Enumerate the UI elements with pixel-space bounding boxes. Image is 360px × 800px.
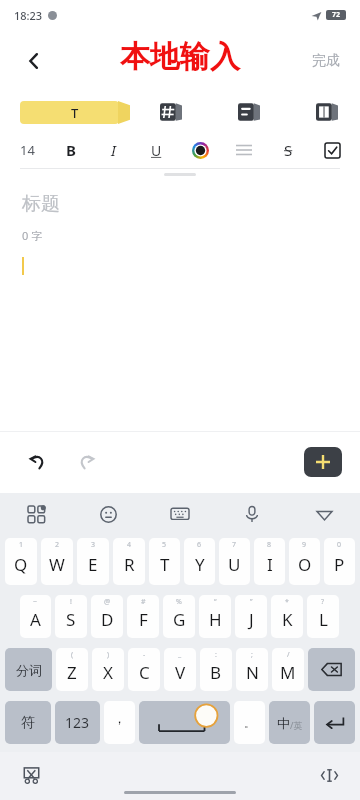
staticText: 0 字 <box>22 228 43 243</box>
staticText: I <box>111 140 116 160</box>
button[interactable]: ; <box>236 648 268 691</box>
button[interactable]: “ <box>199 595 231 638</box>
button[interactable]: Period <box>234 701 265 744</box>
staticText: 本地输入 <box>120 38 240 76</box>
staticText: S <box>66 608 76 631</box>
button[interactable]: ” <box>235 595 267 638</box>
button[interactable]: Bold <box>49 132 92 168</box>
button[interactable]: Checklist <box>310 132 354 168</box>
button[interactable]: Text color <box>178 132 222 168</box>
staticText: - <box>143 650 146 660</box>
button[interactable]: Paragraph style <box>234 97 264 127</box>
button[interactable]: Back <box>14 41 54 81</box>
button[interactable]: Keyboard <box>144 493 216 535</box>
button[interactable]: Space <box>139 701 230 744</box>
button[interactable]: Emoji <box>72 493 144 535</box>
staticText: I <box>267 553 273 576</box>
button[interactable]: 5 <box>149 538 180 585</box>
button[interactable]: Layout <box>312 97 342 127</box>
staticText: /英 <box>290 719 303 731</box>
staticText: 7 <box>232 540 237 550</box>
button[interactable]: 分词 <box>5 648 52 691</box>
button[interactable]: 4 <box>113 538 145 585</box>
button[interactable]: 9 <box>289 538 320 585</box>
button[interactable]: Add <box>304 447 342 477</box>
staticText: 。 <box>244 716 255 730</box>
staticText: K <box>282 608 293 631</box>
staticText: U <box>151 141 162 160</box>
button[interactable]: Underline <box>135 132 178 168</box>
staticText: L <box>319 608 328 631</box>
staticText: _ <box>178 650 182 660</box>
staticText: C <box>139 661 150 684</box>
button[interactable]: 7 <box>219 538 250 585</box>
staticText: / <box>287 650 290 660</box>
button[interactable]: ! <box>55 595 87 638</box>
button[interactable]: Clipboard <box>18 762 44 788</box>
button[interactable]: Enter <box>314 701 355 744</box>
button[interactable]: 6 <box>184 538 215 585</box>
button[interactable]: ( <box>56 648 88 691</box>
staticText: 6 <box>197 540 202 550</box>
button[interactable]: _ <box>164 648 196 691</box>
button[interactable]: 1 <box>5 538 37 585</box>
staticText: H <box>209 608 222 631</box>
button[interactable]: @ <box>91 595 123 638</box>
button[interactable]: 0 <box>324 538 355 585</box>
staticText: Q <box>14 553 28 576</box>
button[interactable]: 2 <box>41 538 73 585</box>
staticText: E <box>88 553 98 576</box>
staticText: 2 <box>55 540 60 550</box>
button[interactable]: Font size <box>6 132 49 168</box>
button[interactable]: # <box>127 595 159 638</box>
button[interactable]: Align <box>222 132 266 168</box>
staticText: “ <box>214 597 217 607</box>
button[interactable]: Undo <box>18 443 56 481</box>
button[interactable]: Italic <box>92 132 135 168</box>
button[interactable]: / <box>272 648 304 691</box>
button[interactable]: Redo <box>68 443 106 481</box>
button[interactable]: T <box>20 101 130 124</box>
staticText: D <box>101 608 114 631</box>
button[interactable]: Comma <box>104 701 135 744</box>
staticText: 1 <box>19 540 24 550</box>
button[interactable]: Backspace <box>308 648 355 691</box>
staticText: 完成 <box>312 52 340 70</box>
staticText: T <box>71 104 79 122</box>
button[interactable]: ? <box>307 595 339 638</box>
button[interactable]: * <box>271 595 303 638</box>
button[interactable]: 3 <box>77 538 109 585</box>
staticText: % <box>176 597 182 607</box>
staticText: O <box>298 553 312 576</box>
button[interactable]: : <box>200 648 232 691</box>
staticText: R <box>124 553 135 576</box>
button[interactable]: - <box>128 648 160 691</box>
staticText: 中 <box>277 715 290 731</box>
button[interactable]: ) <box>92 648 124 691</box>
staticText: V <box>175 661 186 684</box>
staticText: M <box>280 661 296 684</box>
button[interactable]: 123 <box>55 701 100 744</box>
staticText: S <box>284 140 293 160</box>
staticText: 8 <box>267 540 272 550</box>
button[interactable]: Strikethrough <box>266 132 310 168</box>
button[interactable]: Voice input <box>216 493 288 535</box>
staticText: ~ <box>33 597 38 607</box>
button[interactable]: Heading <box>156 97 186 127</box>
button[interactable]: 8 <box>254 538 285 585</box>
staticText: 5 <box>162 540 167 550</box>
button[interactable]: Switch Chinese English <box>269 701 310 744</box>
button[interactable]: Apps <box>0 493 72 535</box>
staticText: N <box>246 661 259 684</box>
staticText: U <box>228 553 241 576</box>
button[interactable]: Hide keyboard <box>288 493 360 535</box>
staticText: ? <box>321 597 325 607</box>
button[interactable]: 完成 <box>302 46 350 76</box>
button[interactable]: Move cursor <box>316 762 342 788</box>
button[interactable]: 符 <box>5 701 51 744</box>
button[interactable]: % <box>163 595 195 638</box>
button[interactable]: ~ <box>20 595 51 638</box>
staticText: A <box>30 608 41 631</box>
staticText: 72 <box>332 10 341 20</box>
staticText: ; <box>251 650 253 660</box>
